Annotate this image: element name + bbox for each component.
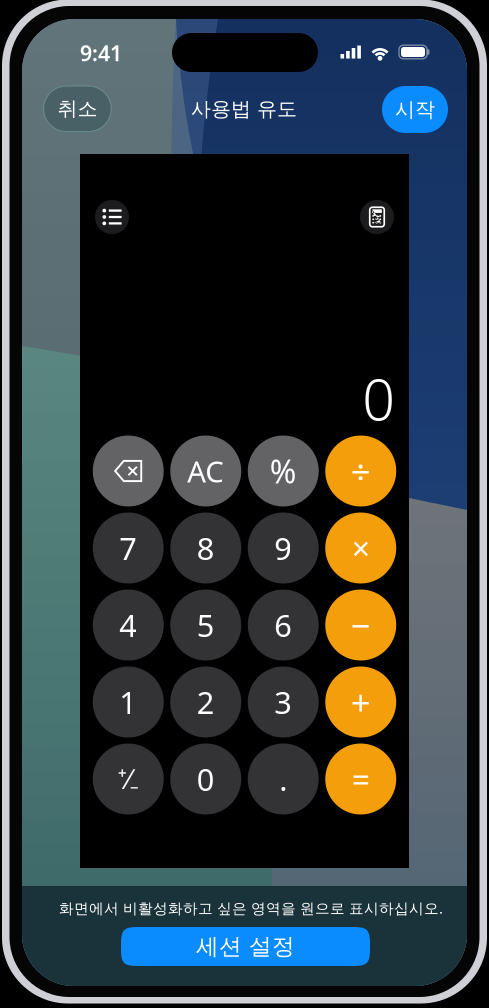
- button[interactable]: =: [322, 740, 399, 817]
- staticText: 0: [197, 759, 215, 799]
- staticText: 9: [274, 528, 292, 568]
- staticText: .: [279, 759, 287, 799]
- button[interactable]: AC: [167, 432, 244, 509]
- button[interactable]: 시작: [382, 86, 448, 133]
- staticText: 0: [362, 360, 395, 436]
- staticText: 3: [274, 682, 292, 722]
- staticText: 사용법 유도: [191, 97, 297, 121]
- button[interactable]: 7: [89, 509, 167, 586]
- staticText: AC: [187, 451, 224, 490]
- button[interactable]: 취소: [44, 86, 111, 132]
- button[interactable]: −: [322, 586, 399, 663]
- staticText: 6: [274, 605, 292, 645]
- staticText: 화면에서 비활성화하고 싶은 영역을 원으로 표시하십시오.: [59, 898, 443, 918]
- staticText: ×: [352, 527, 370, 569]
- button[interactable]: 8: [167, 509, 244, 586]
- staticText: ÷: [351, 448, 371, 494]
- staticText: 4: [119, 605, 137, 645]
- staticText: 9:41: [80, 39, 122, 67]
- button[interactable]: 6: [244, 586, 322, 663]
- button[interactable]: 9: [244, 509, 322, 586]
- button[interactable]: 세션 설정: [121, 927, 370, 966]
- button[interactable]: 0: [167, 740, 244, 817]
- staticText: 7: [119, 528, 137, 568]
- button[interactable]: %: [244, 432, 322, 509]
- button[interactable]: .: [244, 740, 322, 817]
- staticText: −: [351, 602, 371, 648]
- staticText: +: [351, 679, 371, 725]
- button[interactable]: 4: [89, 586, 167, 663]
- button[interactable]: Calculator: [357, 197, 397, 237]
- staticText: 8: [197, 528, 215, 568]
- staticText: %: [270, 450, 297, 492]
- staticText: 세션 설정: [196, 933, 295, 960]
- staticText: ⁺⁄₋: [118, 761, 139, 797]
- staticText: 취소: [57, 96, 97, 121]
- button[interactable]: ×: [322, 509, 399, 586]
- staticText: 시작: [395, 97, 435, 122]
- button[interactable]: 1: [89, 663, 167, 740]
- button[interactable]: 5: [167, 586, 244, 663]
- button[interactable]: 2: [167, 663, 244, 740]
- button[interactable]: ⁺⁄₋: [89, 740, 167, 817]
- button[interactable]: [89, 432, 167, 509]
- button[interactable]: History: [92, 197, 132, 237]
- button[interactable]: +: [322, 663, 399, 740]
- staticText: 1: [119, 682, 137, 722]
- button[interactable]: 3: [244, 663, 322, 740]
- staticText: =: [352, 758, 370, 800]
- staticText: 5: [197, 605, 215, 645]
- button[interactable]: ÷: [322, 432, 399, 509]
- staticText: 2: [197, 682, 215, 722]
